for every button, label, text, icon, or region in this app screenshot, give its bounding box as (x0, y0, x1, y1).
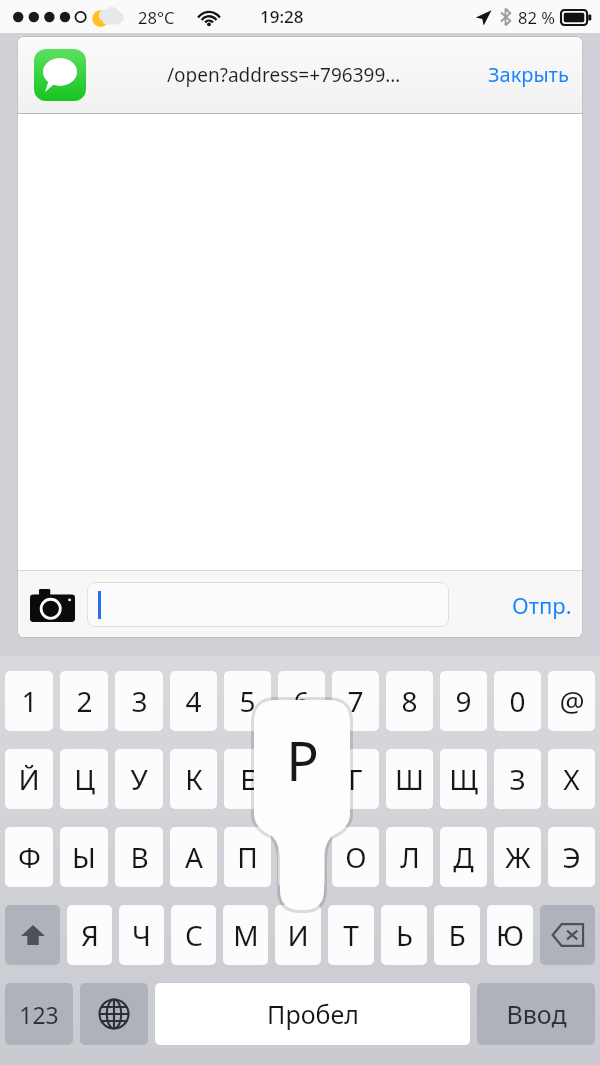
staticText: 0 (509, 682, 526, 720)
button[interactable]: 1 (5, 671, 53, 731)
staticText: 8 (401, 682, 418, 720)
staticText: 9 (455, 682, 472, 720)
button[interactable]: 3 (115, 671, 163, 731)
staticText: П (237, 838, 258, 876)
button[interactable]: Пробел (155, 983, 470, 1045)
button[interactable]: Г (332, 749, 379, 809)
button[interactable]: И (275, 905, 321, 965)
button[interactable]: Ш (386, 749, 433, 809)
button[interactable]: З (494, 749, 541, 809)
staticText: 2 (76, 682, 93, 720)
staticText: 5 (239, 682, 256, 720)
button[interactable]: @ (548, 671, 595, 731)
staticText: А (185, 838, 203, 876)
staticText: Е (240, 760, 256, 798)
button[interactable]: Т (328, 905, 374, 965)
staticText: 6 (293, 682, 310, 720)
staticText: Пробел (267, 997, 359, 1031)
staticText: Ф (18, 838, 41, 876)
button[interactable]: 9 (440, 671, 487, 731)
button[interactable]: 6 (278, 671, 325, 731)
staticText: Б (448, 916, 466, 954)
button[interactable]: Camera (25, 578, 79, 632)
button[interactable]: Е (224, 749, 271, 809)
staticText: Ш (395, 760, 424, 798)
staticText: /open?address=+796399… (167, 62, 401, 88)
staticText: 82 % (518, 6, 555, 28)
staticText: Ж (505, 838, 531, 876)
staticText: Э (562, 838, 581, 876)
button[interactable]: М (223, 905, 268, 965)
button[interactable]: Д (440, 827, 487, 887)
button[interactable]: Р (278, 827, 325, 887)
staticText: 28°C (138, 6, 175, 28)
staticText: Ч (132, 916, 151, 954)
staticText: 3 (131, 682, 148, 720)
staticText: @ (559, 682, 585, 720)
button[interactable] (87, 582, 449, 627)
button[interactable]: Х (548, 749, 595, 809)
button[interactable]: Э (548, 827, 595, 887)
button[interactable]: П (224, 827, 271, 887)
staticText: Отпр. (512, 590, 572, 620)
button[interactable]: Н (278, 749, 325, 809)
staticText: М (233, 916, 259, 954)
staticText: Р (286, 723, 319, 797)
button[interactable]: Ц (60, 749, 108, 809)
button[interactable]: 5 (224, 671, 271, 731)
button[interactable]: У (115, 749, 163, 809)
staticText: 7 (347, 682, 364, 720)
button[interactable]: Ввод (477, 983, 595, 1045)
button[interactable]: 7 (332, 671, 379, 731)
button[interactable]: Change keyboard language (80, 983, 148, 1045)
staticText: Ц (74, 760, 95, 798)
staticText: Д (453, 838, 474, 876)
button[interactable]: В (115, 827, 163, 887)
staticText: Закрыть (488, 61, 569, 88)
staticText: В (130, 838, 149, 876)
staticText: Т (343, 916, 359, 954)
button[interactable]: Ы (60, 827, 108, 887)
button[interactable]: О (332, 827, 379, 887)
button[interactable]: 123 (5, 983, 73, 1045)
button[interactable]: Backspace (540, 905, 595, 965)
button[interactable]: 8 (386, 671, 433, 731)
button[interactable]: 0 (494, 671, 541, 731)
button[interactable]: А (170, 827, 217, 887)
staticText: Ввод (506, 997, 567, 1031)
button[interactable]: К (170, 749, 217, 809)
button[interactable]: С (171, 905, 216, 965)
staticText: С (185, 916, 203, 954)
button[interactable]: Ь (381, 905, 427, 965)
button[interactable]: Щ (440, 749, 487, 809)
button[interactable]: Отпр. (501, 578, 583, 632)
button[interactable]: Ю (487, 905, 533, 965)
staticText: 123 (19, 999, 59, 1030)
staticText: 4 (185, 682, 202, 720)
staticText: Ы (72, 838, 96, 876)
button[interactable]: Shift (5, 905, 60, 965)
button[interactable]: Закрыть (474, 49, 583, 100)
staticText: У (130, 760, 148, 798)
staticText: Й (18, 760, 40, 798)
button[interactable]: Я (67, 905, 112, 965)
button[interactable]: Л (386, 827, 433, 887)
staticText: Щ (449, 760, 478, 798)
staticText: О (345, 838, 367, 876)
button[interactable]: 2 (60, 671, 108, 731)
button[interactable]: 4 (170, 671, 217, 731)
button[interactable]: Ж (494, 827, 541, 887)
staticText: К (185, 760, 203, 798)
staticText: Л (400, 838, 420, 876)
staticText: Ю (496, 916, 524, 954)
staticText: З (509, 760, 526, 798)
staticText: И (287, 916, 309, 954)
staticText: 19:28 (260, 5, 304, 28)
button[interactable]: Б (434, 905, 480, 965)
button[interactable]: Й (5, 749, 53, 809)
button[interactable]: Ч (119, 905, 164, 965)
staticText: Я (81, 916, 99, 954)
button[interactable]: Ф (5, 827, 53, 887)
staticText: Ь (396, 916, 413, 954)
other: Messages (34, 49, 86, 101)
